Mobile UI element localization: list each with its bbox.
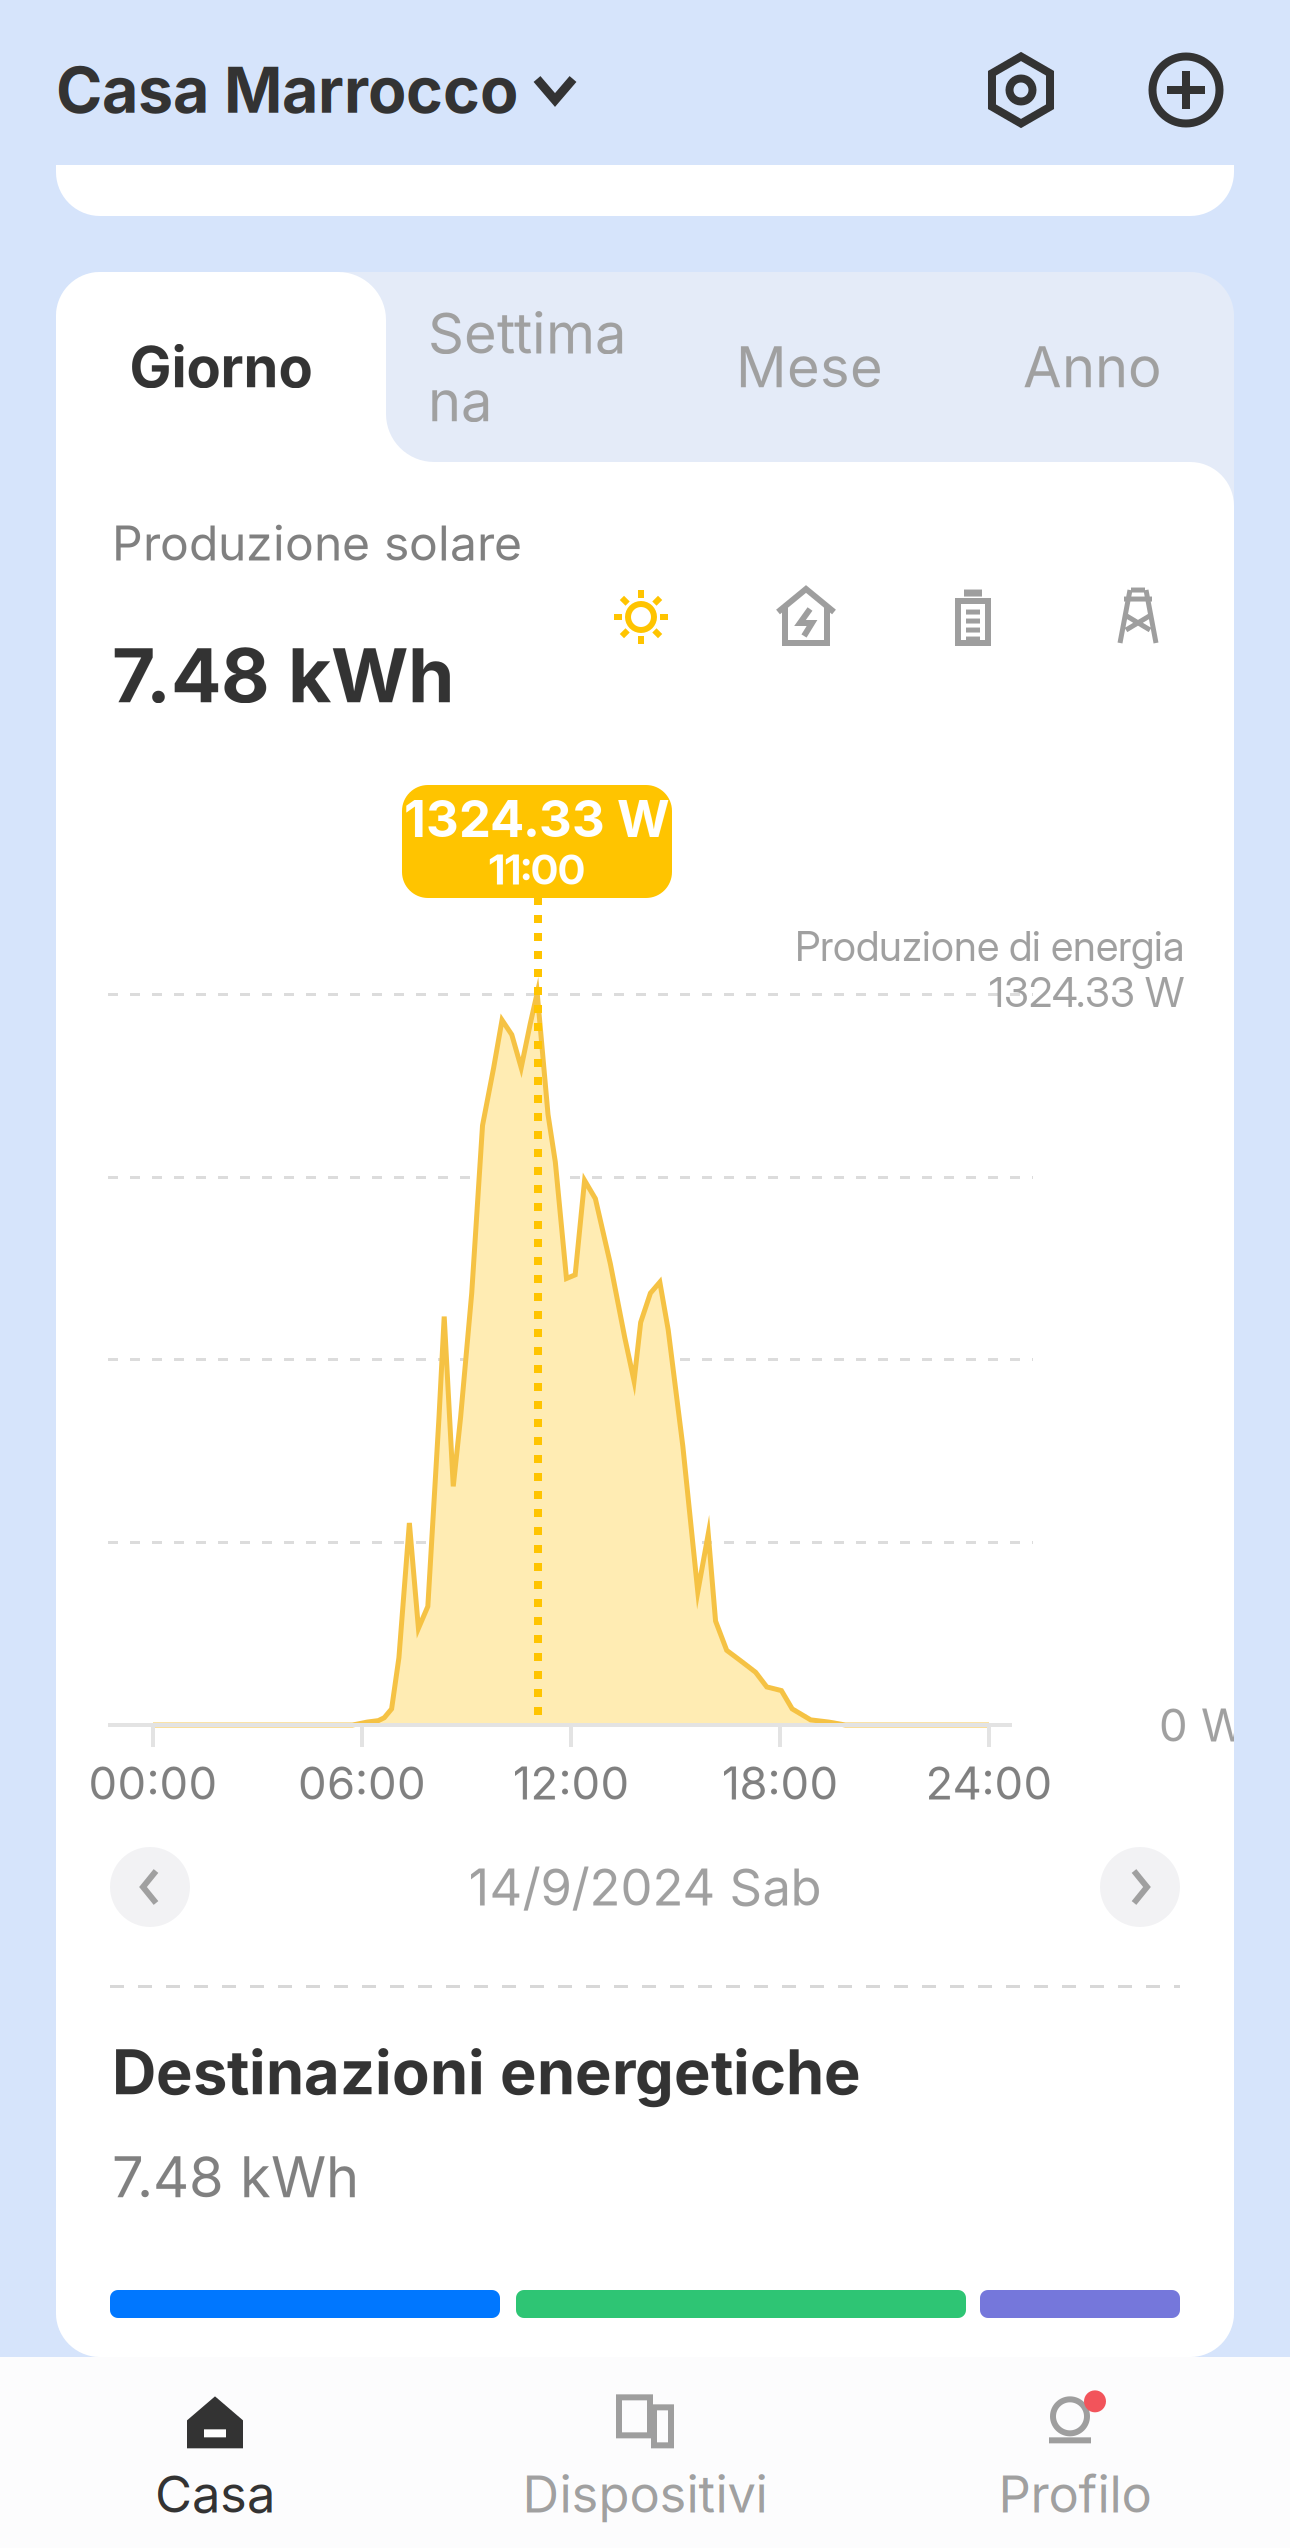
button[interactable]: Mese (668, 272, 951, 462)
staticText: 1324.33 W (404, 788, 670, 849)
staticText: Produzione di energia (795, 921, 1184, 971)
button[interactable]: Giorno (56, 272, 386, 462)
button[interactable]: Impostazioni (983, 52, 1059, 128)
button[interactable]: Casa Marrocco (56, 52, 676, 128)
button[interactable]: Profilo (920, 2383, 1230, 2533)
staticText: 7.48 kWh (112, 630, 454, 720)
staticText: 1324.33 W (989, 967, 1184, 1017)
button[interactable]: Consumo casa (774, 585, 838, 649)
staticText: Settima na (428, 299, 626, 435)
staticText: 0 W (1159, 1698, 1246, 1752)
staticText: 18:00 (721, 1756, 838, 1810)
staticText: Casa Marrocco (56, 52, 518, 128)
button[interactable]: Giorno precedente (110, 1847, 190, 1927)
staticText: Destinazioni energetiche (112, 2035, 861, 2109)
button[interactable]: Rete (1106, 585, 1170, 649)
staticText: Casa (155, 2463, 275, 2525)
staticText: 24:00 (925, 1756, 1052, 1810)
button[interactable]: Batteria (941, 585, 1005, 649)
staticText: 00:00 (88, 1756, 217, 1810)
staticText: 14/9/2024 Sab (468, 1856, 821, 1918)
staticText: 11:00 (489, 844, 585, 894)
button[interactable]: Casa (60, 2383, 370, 2533)
staticText: Giorno (129, 333, 312, 401)
button[interactable]: Aggiungi (1148, 52, 1224, 128)
staticText: Dispositivi (522, 2463, 767, 2525)
staticText: Mese (736, 333, 883, 401)
staticText: Profilo (998, 2463, 1151, 2525)
staticText: 06:00 (298, 1756, 426, 1810)
button[interactable]: Settima na (386, 272, 668, 462)
button[interactable]: Giorno successivo (1100, 1847, 1180, 1927)
staticText: 7.48 kWh (112, 2143, 359, 2211)
staticText: 12:00 (512, 1756, 629, 1810)
staticText: Anno (1023, 333, 1162, 401)
button[interactable]: Dispositivi (490, 2383, 800, 2533)
staticText: Produzione solare (112, 514, 522, 572)
button[interactable]: Anno (951, 272, 1234, 462)
button[interactable]: Solare (609, 585, 673, 649)
